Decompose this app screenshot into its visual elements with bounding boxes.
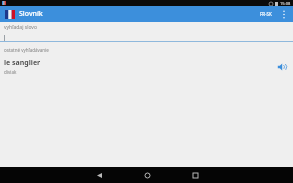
staticText: 15:08 xyxy=(280,1,291,6)
staticText: diviak xyxy=(4,69,17,75)
button[interactable]: Back xyxy=(82,167,116,183)
button[interactable]: FR-SK xyxy=(257,9,275,19)
staticText: FR-SK xyxy=(260,11,272,17)
button[interactable]: Home xyxy=(130,167,164,183)
button[interactable]: Source language French xyxy=(4,9,15,20)
button[interactable]: Play pronunciation xyxy=(275,60,289,74)
button[interactable]: le sanglier xyxy=(0,57,293,76)
button[interactable]: More options xyxy=(279,6,289,22)
button[interactable] xyxy=(0,34,293,41)
button[interactable]: Recent apps xyxy=(178,167,212,183)
staticText: ostatné vyhľadávanie xyxy=(4,47,49,53)
staticText: le sanglier xyxy=(4,58,41,68)
staticText: vyhľadaj slovo xyxy=(4,24,37,31)
staticText: Slovník xyxy=(19,9,43,19)
